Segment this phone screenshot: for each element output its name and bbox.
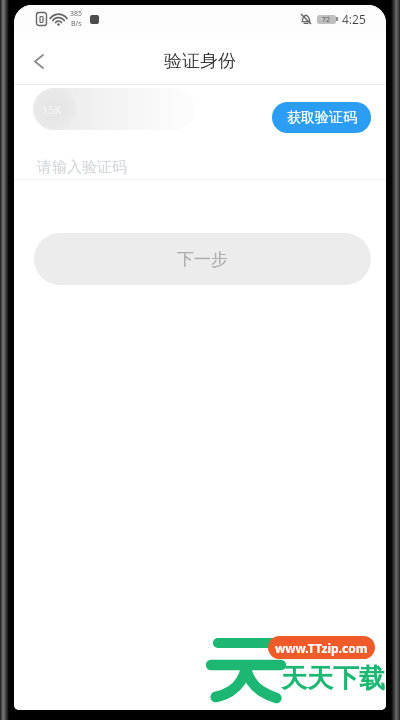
- staticText: B/s: [71, 19, 82, 29]
- staticText: 天天下载: [281, 662, 385, 695]
- staticText: www.TTzip.com: [275, 640, 368, 656]
- staticText: 请输入验证码: [37, 158, 127, 177]
- staticText: 4:25: [342, 11, 366, 27]
- button[interactable]: 获取验证码: [272, 102, 371, 133]
- staticText: 15K: [42, 102, 62, 117]
- staticText: 获取验证码: [287, 109, 357, 127]
- staticText: 72: [322, 15, 331, 24]
- button[interactable]: [22, 44, 56, 78]
- button[interactable]: 下一步: [34, 233, 371, 285]
- staticText: 下一步: [177, 249, 228, 270]
- staticText: 385: [70, 9, 83, 19]
- staticText: 验证身份: [164, 50, 236, 73]
